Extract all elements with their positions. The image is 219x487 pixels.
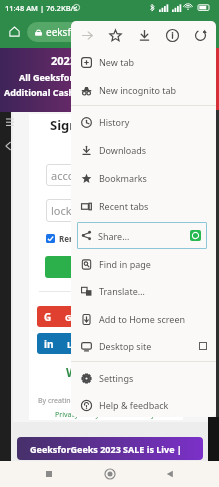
button[interactable]: Forward bbox=[75, 23, 99, 47]
staticText: GeeksforGeeks 2023 SALE is Live | bbox=[30, 443, 182, 455]
staticText: Help & feedback bbox=[99, 399, 169, 411]
staticText: Additional Cashback on Payment bbox=[4, 86, 152, 98]
staticText: Bookmarks bbox=[99, 172, 147, 184]
staticText: History bbox=[99, 116, 130, 128]
staticText: LinkedIn bbox=[67, 338, 107, 350]
staticText: account bbox=[51, 168, 92, 183]
button[interactable]: GeeksforGeeks 2023 SALE is Live | bbox=[17, 437, 203, 460]
button[interactable]: Find in page bbox=[71, 250, 216, 278]
button[interactable]: Home bbox=[98, 462, 122, 486]
button[interactable]: Back bbox=[158, 462, 182, 486]
button[interactable]: Bookmarks bbox=[71, 164, 216, 192]
staticText: Settings bbox=[99, 372, 134, 384]
staticText: Sign In bbox=[50, 116, 95, 134]
staticText: Find in page bbox=[99, 258, 151, 270]
button[interactable]: Translate… bbox=[71, 277, 216, 305]
staticText: Translate… bbox=[99, 285, 145, 297]
staticText: Share… bbox=[98, 230, 130, 242]
staticText: New incognito tab bbox=[99, 84, 177, 96]
button[interactable]: New incognito tab bbox=[71, 76, 216, 104]
button[interactable]: Settings bbox=[71, 364, 216, 392]
staticText: Why Sign Up? bbox=[66, 364, 147, 380]
staticText: By creating this account, you agree to o… bbox=[38, 396, 175, 406]
button[interactable]: Home bbox=[5, 22, 24, 41]
button[interactable]: Recent tabs bbox=[71, 192, 216, 220]
button[interactable]: lock bbox=[46, 199, 166, 222]
staticText: lock bbox=[51, 203, 72, 218]
button[interactable]: Sign In bbox=[45, 256, 167, 278]
button[interactable]: account bbox=[46, 164, 166, 186]
button[interactable]: History bbox=[71, 108, 216, 136]
button[interactable]: Bookmark bbox=[103, 23, 127, 47]
button[interactable]: in bbox=[37, 333, 175, 354]
staticText: Sign In bbox=[89, 260, 124, 274]
button[interactable]: New tab bbox=[71, 48, 216, 76]
staticText: G bbox=[44, 310, 52, 324]
button[interactable]: Page info bbox=[160, 23, 184, 47]
button[interactable]: Share… bbox=[77, 222, 207, 249]
staticText: 11:48 AM | 76.2KB/s bbox=[5, 3, 78, 13]
button[interactable]: Reload bbox=[188, 23, 212, 47]
staticText: eeksforgeeks.org bbox=[46, 25, 128, 39]
button[interactable]: Recents bbox=[37, 462, 61, 486]
button[interactable]: Remember me bbox=[46, 233, 118, 244]
button[interactable]: G bbox=[37, 306, 175, 327]
staticText: Downloads bbox=[99, 144, 147, 156]
staticText: Privacy Policy & Cookies Policy. bbox=[55, 410, 157, 420]
button[interactable]: Desktop site bbox=[71, 332, 216, 360]
button[interactable]: eeksforgeeks.org bbox=[27, 22, 177, 42]
staticText: Recent tabs bbox=[99, 200, 149, 212]
staticText: in bbox=[44, 337, 54, 351]
button[interactable]: Downloads bbox=[71, 136, 216, 164]
staticText: 2023 SALE bbox=[51, 53, 106, 68]
button[interactable]: Help & feedback bbox=[71, 391, 216, 417]
staticText: Google bbox=[65, 311, 97, 323]
staticText: New tab bbox=[99, 56, 134, 68]
button[interactable]: Download bbox=[132, 23, 156, 47]
staticText: Add to Home screen bbox=[99, 313, 186, 325]
button[interactable]: Add to Home screen bbox=[71, 305, 216, 333]
staticText: All Geeksforgeeks Courses bbox=[19, 71, 138, 83]
staticText: Desktop site bbox=[99, 340, 152, 352]
staticText: Remember me bbox=[59, 233, 118, 244]
